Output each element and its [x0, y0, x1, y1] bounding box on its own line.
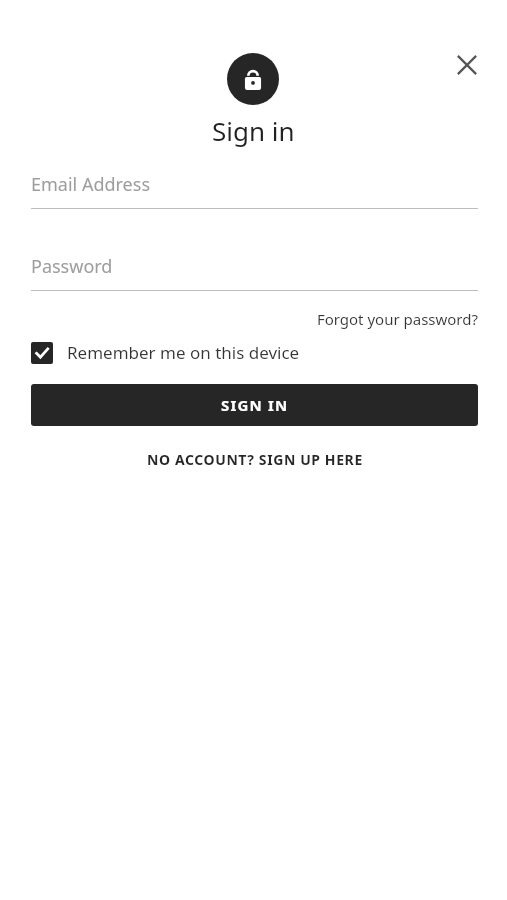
staticText: Remember me on this device: [67, 341, 300, 364]
staticText: Email Address: [31, 172, 151, 197]
button[interactable]: Password: [31, 254, 478, 291]
button[interactable]: SIGN IN: [31, 384, 478, 426]
staticText: Sign in: [212, 113, 295, 148]
staticText: Forgot your password?: [316, 309, 478, 329]
button[interactable]: Remember me on this device: [31, 341, 300, 364]
staticText: NO ACCOUNT? SIGN UP HERE: [147, 450, 363, 469]
button[interactable]: NO ACCOUNT? SIGN UP HERE: [139, 446, 371, 473]
button[interactable]: Email Address: [31, 172, 478, 209]
button[interactable]: Forgot your password?: [316, 309, 478, 329]
button[interactable]: Close: [443, 41, 491, 89]
staticText: Password: [31, 254, 113, 279]
staticText: SIGN IN: [221, 395, 289, 415]
